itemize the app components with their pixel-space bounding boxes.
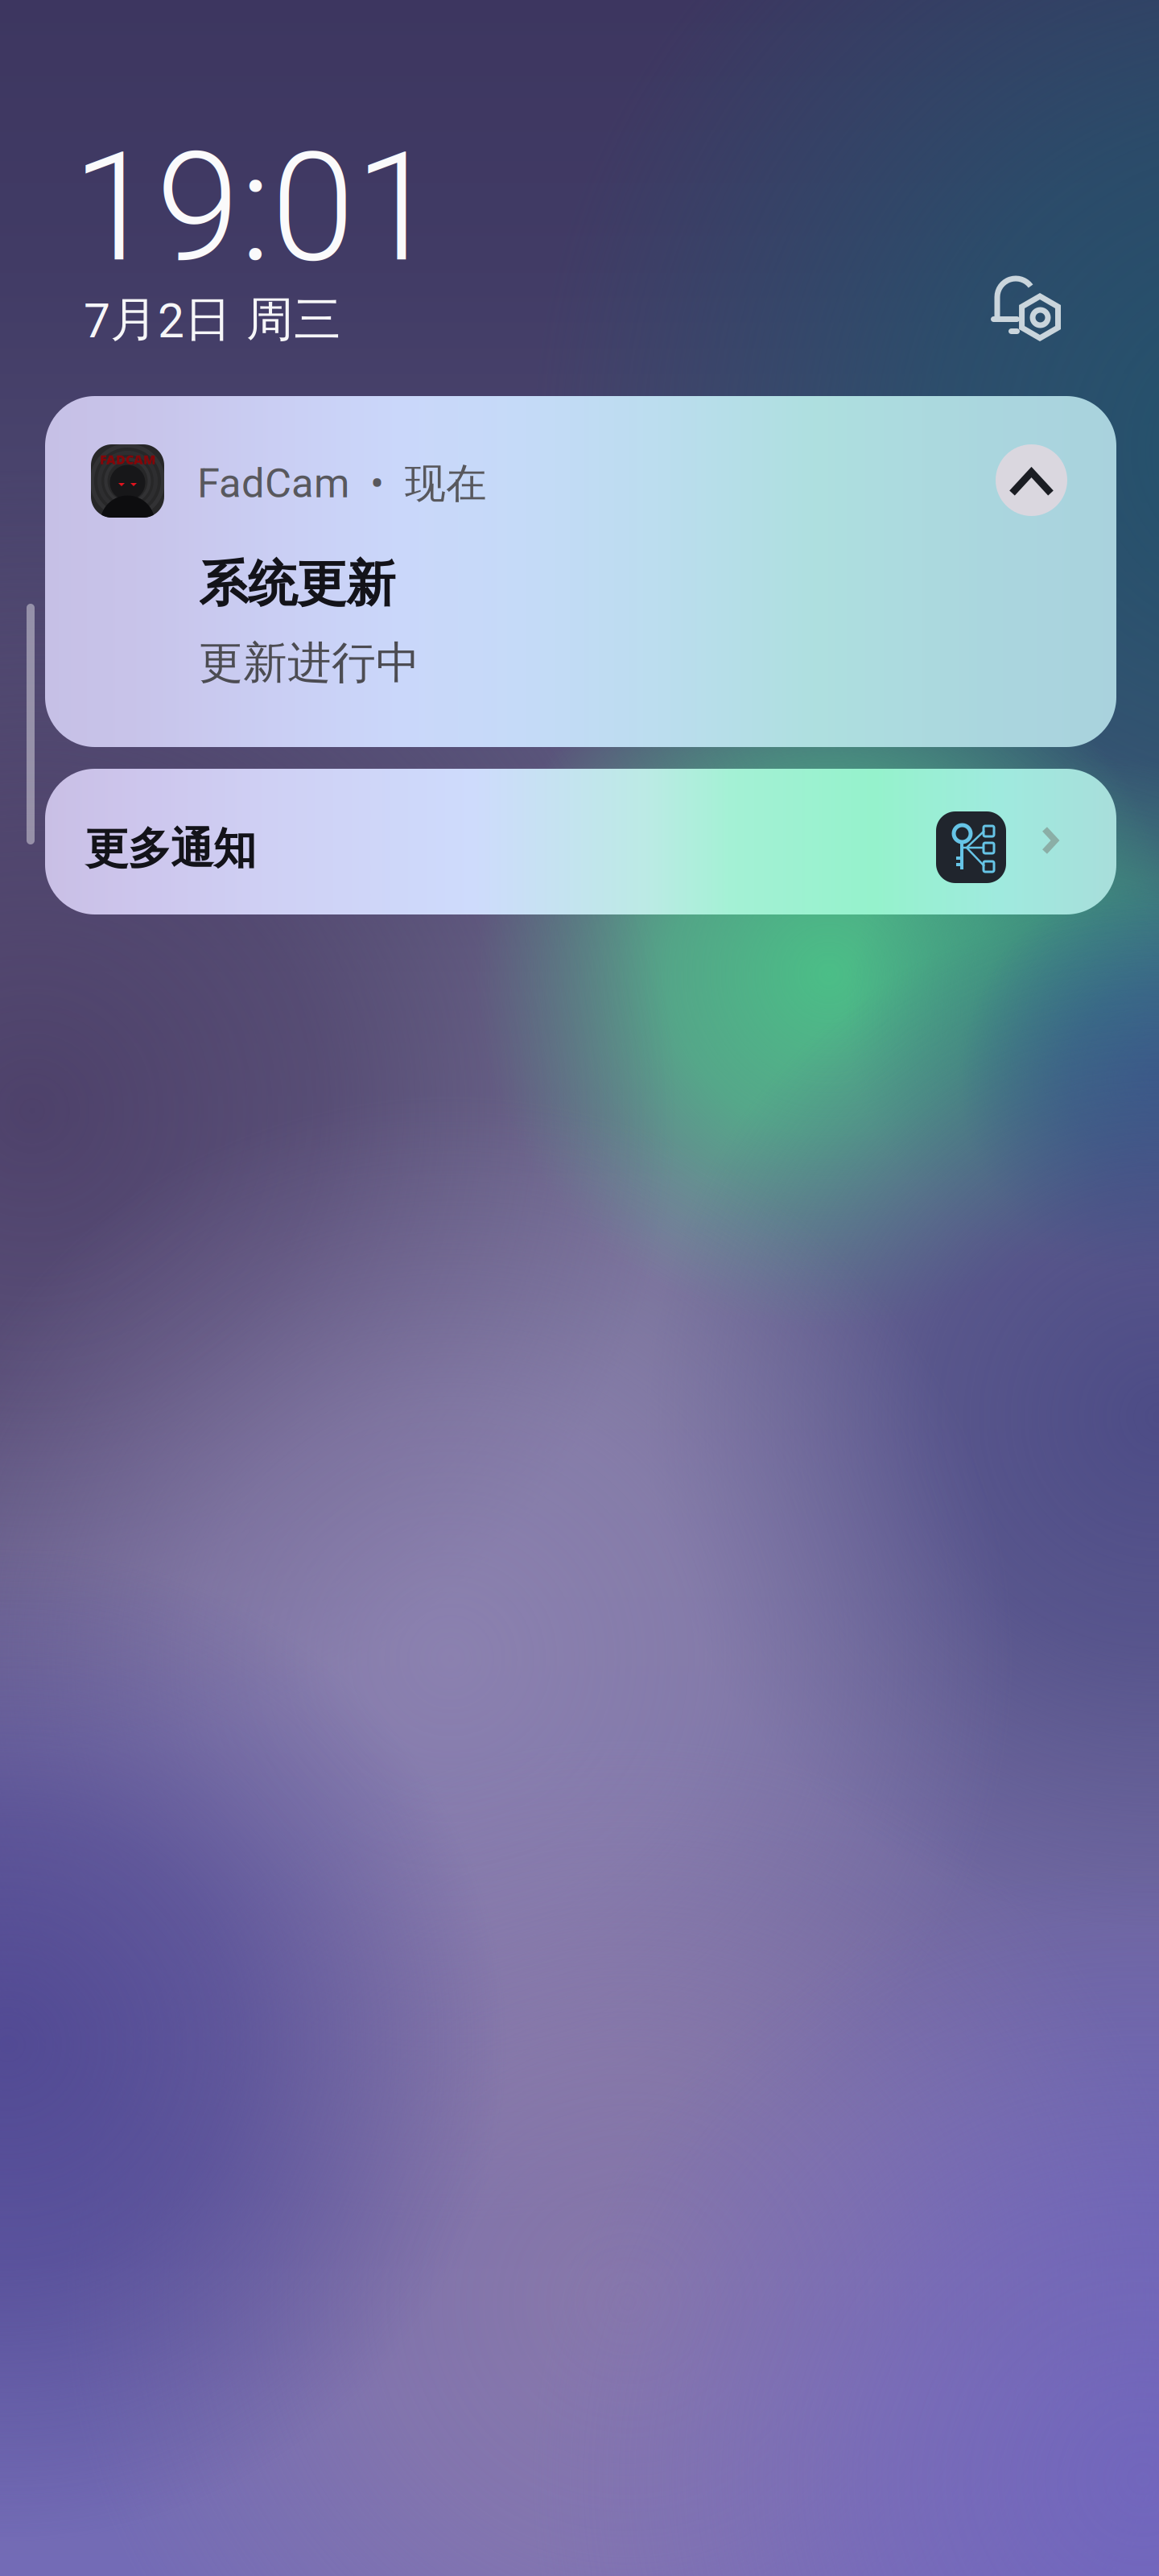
staticText: FADCAM: [100, 450, 155, 468]
staticText: FadCam • 现在: [197, 458, 487, 509]
button[interactable]: FADCAM: [45, 396, 1116, 747]
button[interactable]: 更多通知: [45, 769, 1116, 914]
button[interactable]: Notification settings: [978, 259, 1074, 353]
staticText: 更新进行中: [199, 635, 420, 691]
staticText: 更多通知: [85, 822, 256, 876]
staticText: 19:01: [72, 120, 439, 296]
staticText: 7月2日 周三: [84, 290, 341, 349]
staticText: 系统更新: [199, 553, 395, 615]
